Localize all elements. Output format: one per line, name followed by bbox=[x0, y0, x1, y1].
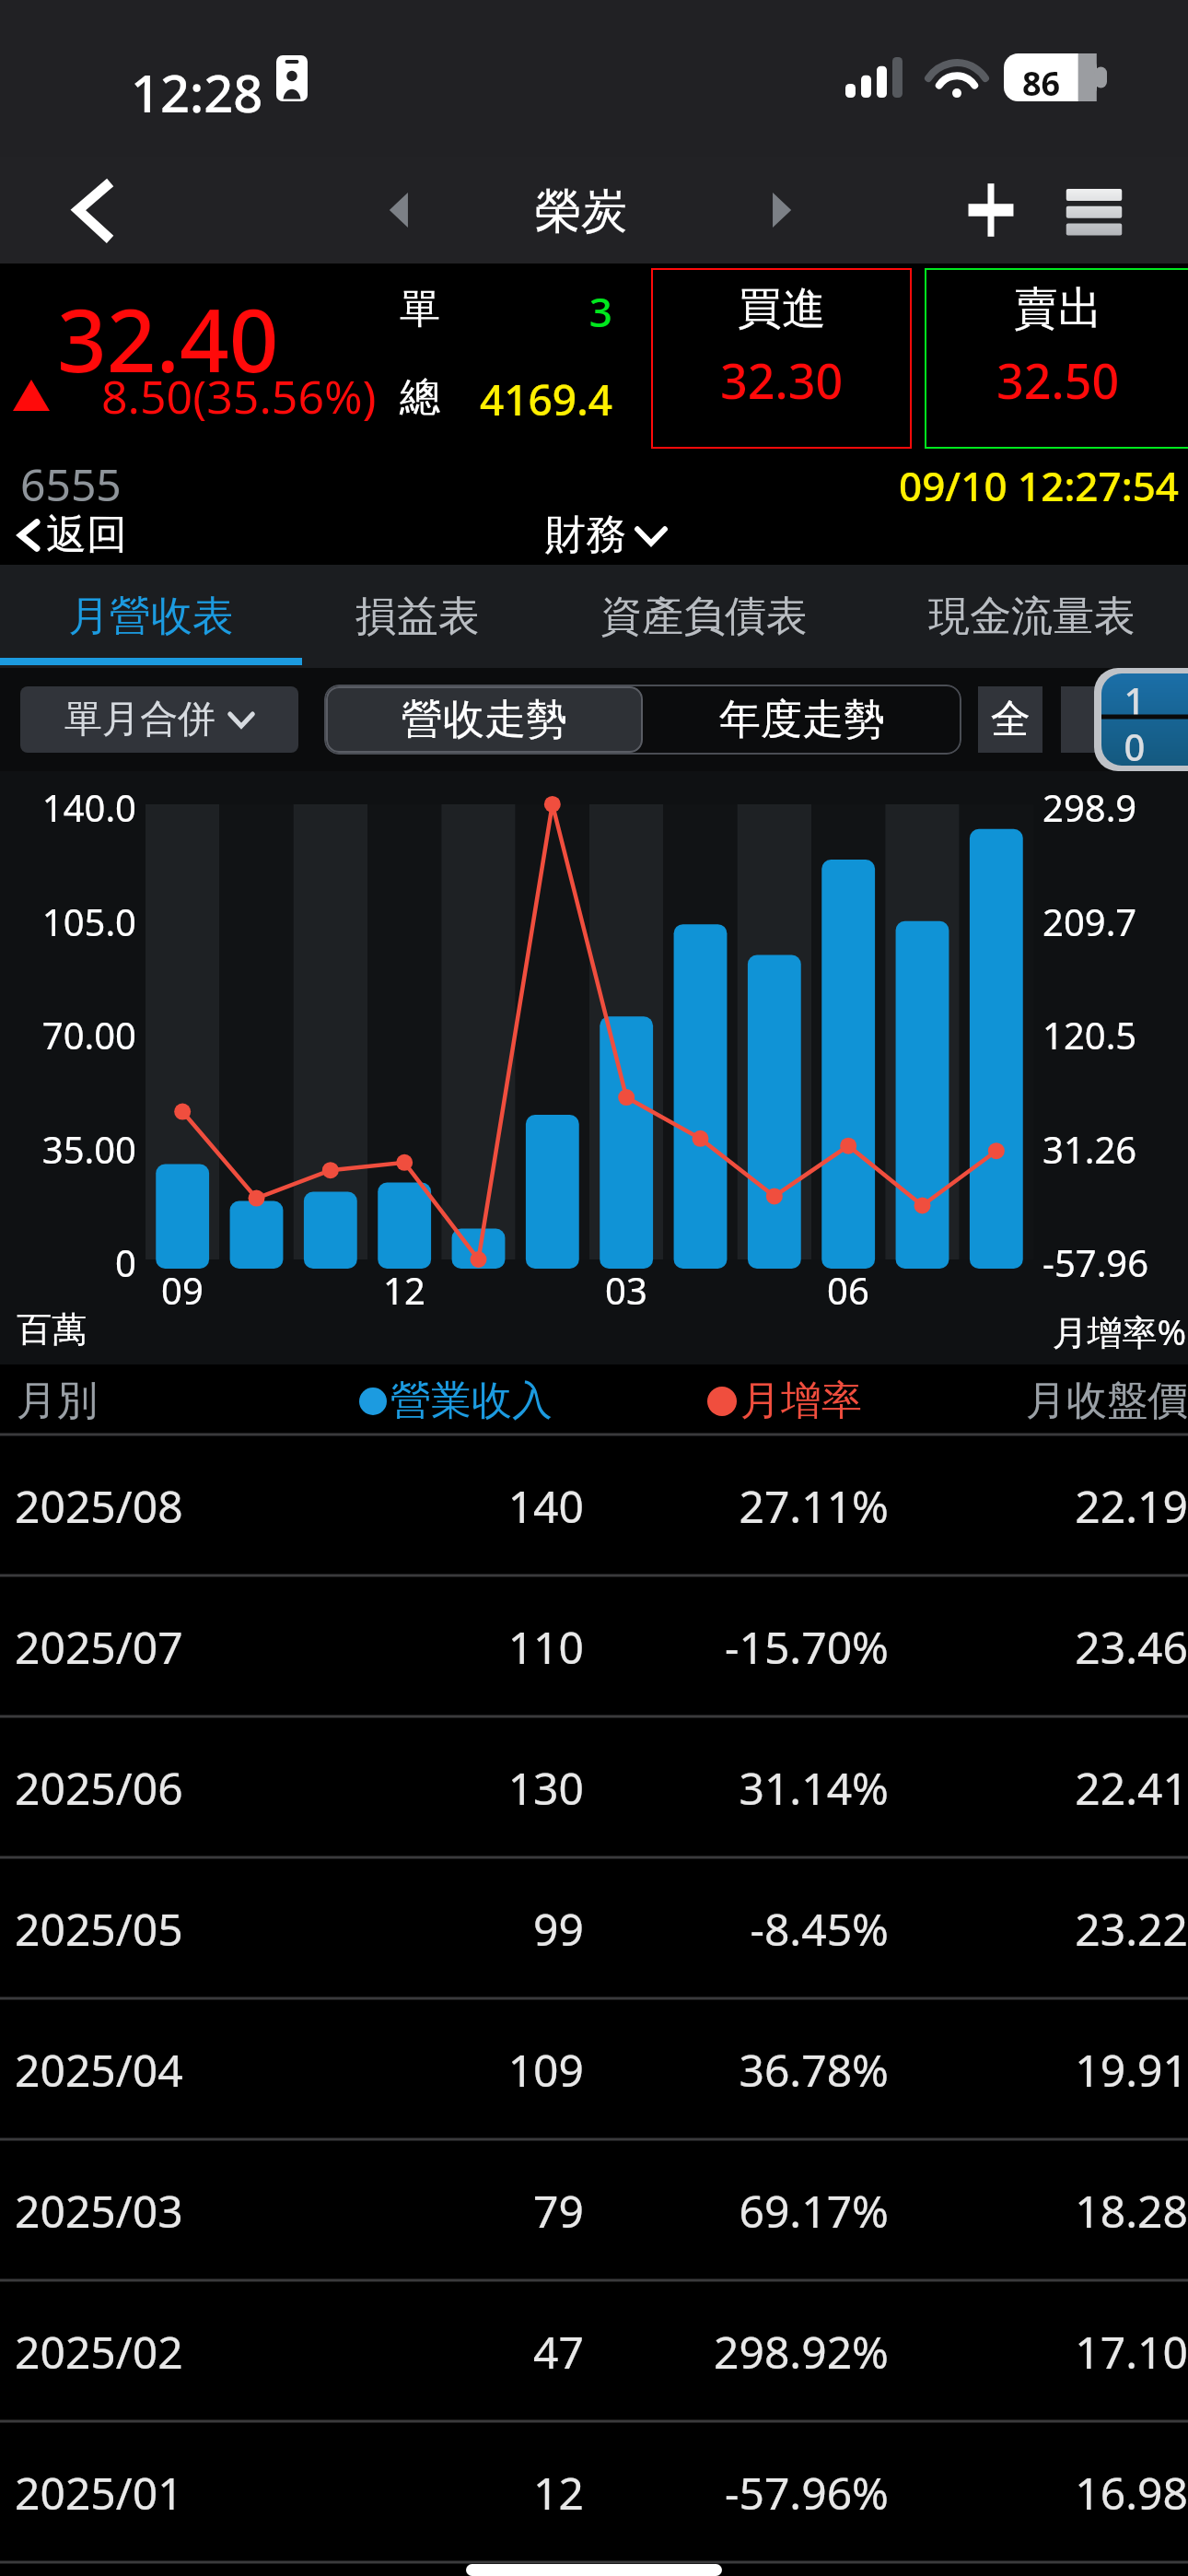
staticText: 損益表 bbox=[355, 591, 480, 643]
staticText: 月收盤價 bbox=[884, 1376, 1188, 1426]
staticText: 109 bbox=[359, 2040, 584, 2100]
button[interactable]: 損益表 bbox=[302, 565, 532, 668]
button[interactable]: 單月合併 bbox=[20, 686, 298, 753]
staticText: 69.17% bbox=[608, 2181, 889, 2241]
staticText: 23.22 bbox=[916, 1899, 1188, 1959]
staticText: 年度走勢 bbox=[719, 694, 885, 746]
button[interactable]: 全 bbox=[978, 686, 1042, 753]
staticText: 2025/08 bbox=[15, 1476, 183, 1536]
button[interactable]: 月增率 bbox=[707, 1376, 862, 1426]
button[interactable]: 2025/01 bbox=[0, 2423, 1188, 2564]
staticText: -15.70% bbox=[608, 1617, 889, 1677]
staticText: 2025/05 bbox=[15, 1899, 183, 1959]
button[interactable]: Add bbox=[958, 177, 1024, 243]
button[interactable]: 財務 bbox=[545, 509, 667, 560]
staticText: 月營收表 bbox=[68, 591, 234, 643]
staticText: 16.98 bbox=[916, 2463, 1188, 2523]
button[interactable]: 現金流量表 bbox=[875, 565, 1188, 668]
button[interactable]: 買進 bbox=[651, 268, 912, 449]
staticText: 月增率% bbox=[884, 1307, 1186, 1355]
staticText: 23.46 bbox=[916, 1617, 1188, 1677]
button[interactable]: 2025/03 bbox=[0, 2141, 1188, 2282]
button[interactable]: 2025/07 bbox=[0, 1577, 1188, 1718]
staticText: 06 bbox=[811, 1265, 885, 1315]
staticText: 營業收入 bbox=[390, 1376, 553, 1426]
staticText: 22.19 bbox=[916, 1476, 1188, 1536]
button[interactable]: 2025/02 bbox=[0, 2282, 1188, 2423]
staticText: 09/10 12:27:54 bbox=[792, 458, 1179, 513]
button[interactable]: 資產負債表 bbox=[532, 565, 875, 668]
button[interactable]: 2025/08 bbox=[0, 1436, 1188, 1577]
staticText: 27.11% bbox=[608, 1476, 889, 1536]
staticText: 全 bbox=[991, 695, 1031, 744]
button[interactable]: 返回 bbox=[15, 509, 127, 560]
staticText: 2025/03 bbox=[15, 2181, 183, 2241]
staticText: 19.91 bbox=[916, 2040, 1188, 2100]
staticText: 2025/01 bbox=[15, 2463, 183, 2523]
staticText: 8.50(35.56%) bbox=[101, 365, 377, 427]
staticText: 2025/04 bbox=[15, 2040, 183, 2100]
staticText: 現金流量表 bbox=[928, 591, 1136, 643]
staticText: 70.00 bbox=[0, 1010, 136, 1060]
staticText: 4169.4 bbox=[433, 370, 612, 428]
button[interactable]: Back bbox=[52, 170, 140, 251]
staticText: 3 bbox=[479, 284, 612, 339]
staticText: 榮炭 bbox=[535, 182, 627, 240]
staticText: 0 bbox=[1114, 721, 1155, 766]
staticText: 35.00 bbox=[0, 1124, 136, 1174]
staticText: 1 bbox=[1114, 675, 1155, 725]
staticText: 資產負債表 bbox=[600, 591, 808, 643]
button[interactable]: 2025/05 bbox=[0, 1859, 1188, 2000]
staticText: 36.78% bbox=[608, 2040, 889, 2100]
staticText: 月增率 bbox=[740, 1376, 862, 1426]
staticText: 32.30 bbox=[720, 347, 844, 413]
staticText: 17.10 bbox=[916, 2322, 1188, 2382]
button[interactable]: 2025/06 bbox=[0, 1718, 1188, 1859]
staticText: 返回 bbox=[46, 509, 127, 560]
staticText: 140.0 bbox=[0, 782, 136, 832]
staticText: 32.40 bbox=[57, 280, 279, 398]
staticText: 31.14% bbox=[608, 1758, 889, 1818]
staticText: 209.7 bbox=[1042, 896, 1188, 946]
staticText: 月別 bbox=[17, 1376, 98, 1426]
staticText: 47 bbox=[359, 2322, 584, 2382]
staticText: 0 bbox=[0, 1237, 136, 1287]
staticText: 6555 bbox=[20, 454, 122, 514]
staticText: 12 bbox=[359, 2463, 584, 2523]
button[interactable]: 年度走勢 bbox=[645, 686, 960, 753]
staticText: 12 bbox=[367, 1265, 441, 1315]
staticText: 86 bbox=[1022, 61, 1061, 106]
staticText: 單月合併 bbox=[64, 696, 215, 744]
staticText: 31.26 bbox=[1042, 1124, 1188, 1174]
button[interactable] bbox=[1061, 686, 1144, 753]
button[interactable]: 月營收表 bbox=[0, 565, 302, 668]
button[interactable]: Next stock bbox=[755, 184, 807, 236]
staticText: 105.0 bbox=[0, 896, 136, 946]
staticText: -8.45% bbox=[608, 1899, 889, 1959]
staticText: 單 bbox=[400, 284, 440, 334]
button[interactable]: 賣出 bbox=[925, 268, 1188, 449]
staticText: 總 bbox=[400, 372, 440, 423]
staticText: 79 bbox=[359, 2181, 584, 2241]
button[interactable]: 營業收入 bbox=[359, 1376, 553, 1426]
button[interactable]: Menu bbox=[1061, 177, 1127, 243]
staticText: 22.41 bbox=[916, 1758, 1188, 1818]
staticText: 2025/07 bbox=[15, 1617, 183, 1677]
button[interactable]: 2025/04 bbox=[0, 2000, 1188, 2141]
staticText: -57.96 bbox=[1042, 1237, 1188, 1287]
staticText: 2025/02 bbox=[15, 2322, 183, 2382]
button[interactable]: 營收走勢 bbox=[326, 686, 643, 753]
staticText: 買進 bbox=[738, 281, 826, 336]
staticText: 營收走勢 bbox=[402, 694, 567, 746]
staticText: 18.28 bbox=[916, 2181, 1188, 2241]
staticText: 298.9 bbox=[1042, 782, 1188, 832]
staticText: 03 bbox=[589, 1265, 663, 1315]
staticText: 賣出 bbox=[1014, 281, 1102, 336]
staticText: 財務 bbox=[545, 509, 626, 560]
staticText: 120.5 bbox=[1042, 1010, 1188, 1060]
staticText: 百萬 bbox=[17, 1307, 87, 1352]
button[interactable]: Previous stock bbox=[374, 184, 425, 236]
staticText: 32.50 bbox=[996, 347, 1120, 413]
staticText: 130 bbox=[359, 1758, 584, 1818]
staticText: 99 bbox=[359, 1899, 584, 1959]
